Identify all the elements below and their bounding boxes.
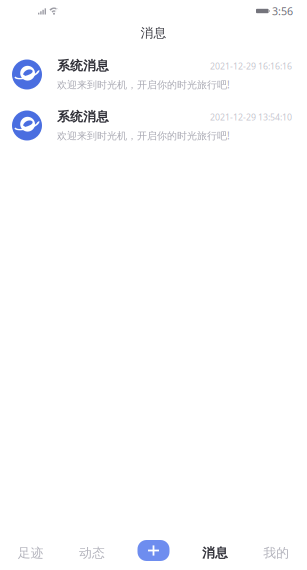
button[interactable]: 发布 xyxy=(123,525,184,570)
staticText: 我的 xyxy=(263,545,289,561)
button[interactable]: 我的 xyxy=(246,525,307,570)
button[interactable]: 系统消息 xyxy=(0,49,307,100)
staticText: 3:56 xyxy=(272,4,293,18)
staticText: 系统消息 xyxy=(57,109,109,125)
button[interactable]: 系统消息 xyxy=(0,100,307,151)
button[interactable]: 足迹 xyxy=(0,525,61,570)
staticText: 欢迎来到时光机，开启你的时光旅行吧! xyxy=(57,78,230,91)
staticText: 动态 xyxy=(79,545,105,561)
button[interactable]: 消息 xyxy=(184,525,246,570)
staticText: 消息 xyxy=(202,545,228,561)
staticText: 消息 xyxy=(140,25,166,41)
button[interactable]: 动态 xyxy=(61,525,123,570)
staticText: 欢迎来到时光机，开启你的时光旅行吧! xyxy=(57,129,230,142)
staticText: 2021-12-29 13:54:10 xyxy=(210,111,292,123)
staticText: 2021-12-29 16:16:16 xyxy=(210,60,292,72)
staticText: 足迹 xyxy=(18,545,44,561)
staticText: 系统消息 xyxy=(57,58,109,74)
